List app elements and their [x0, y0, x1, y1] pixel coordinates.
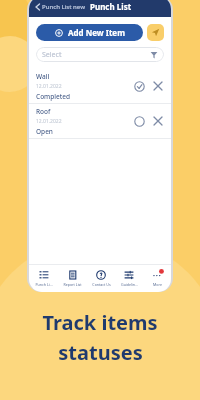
button[interactable]: Wall [29, 69, 171, 103]
staticText: statuses [58, 339, 143, 366]
button[interactable]: Punch Li... [29, 266, 58, 290]
button[interactable]: Open [132, 114, 146, 128]
button[interactable]: More [143, 266, 171, 290]
staticText: Add New Item [68, 27, 125, 38]
staticText: Guidelin... [121, 282, 138, 287]
button[interactable]: Remove [152, 80, 164, 92]
staticText: Completed [36, 92, 71, 101]
staticText: Select [42, 50, 62, 60]
button[interactable]: Completed [132, 79, 146, 93]
button[interactable]: Roof [29, 104, 171, 138]
staticText: 12.01.2022 [36, 118, 62, 125]
staticText: Track items [42, 309, 158, 336]
button[interactable]: Report List [58, 266, 87, 290]
staticText: Wall [36, 72, 50, 81]
staticText: 12.01.2022 [36, 83, 62, 90]
button[interactable]: Guidelin... [115, 266, 143, 290]
button[interactable]: Back [34, 3, 42, 11]
staticText: Punch List [90, 1, 132, 12]
staticText: Punch Li... [35, 282, 53, 287]
button[interactable]: Remove [152, 115, 164, 127]
staticText: Report List [63, 282, 82, 287]
button[interactable]: Contact Us [87, 266, 115, 290]
button[interactable]: Send [147, 24, 164, 41]
button[interactable]: Select [36, 47, 164, 62]
staticText: Open [36, 127, 53, 136]
staticText: Roof [36, 107, 51, 116]
staticText: Punch List new [42, 3, 85, 11]
staticText: More [153, 282, 162, 287]
staticText: Contact Us [92, 282, 111, 287]
button[interactable]: Add New Item [36, 24, 143, 41]
